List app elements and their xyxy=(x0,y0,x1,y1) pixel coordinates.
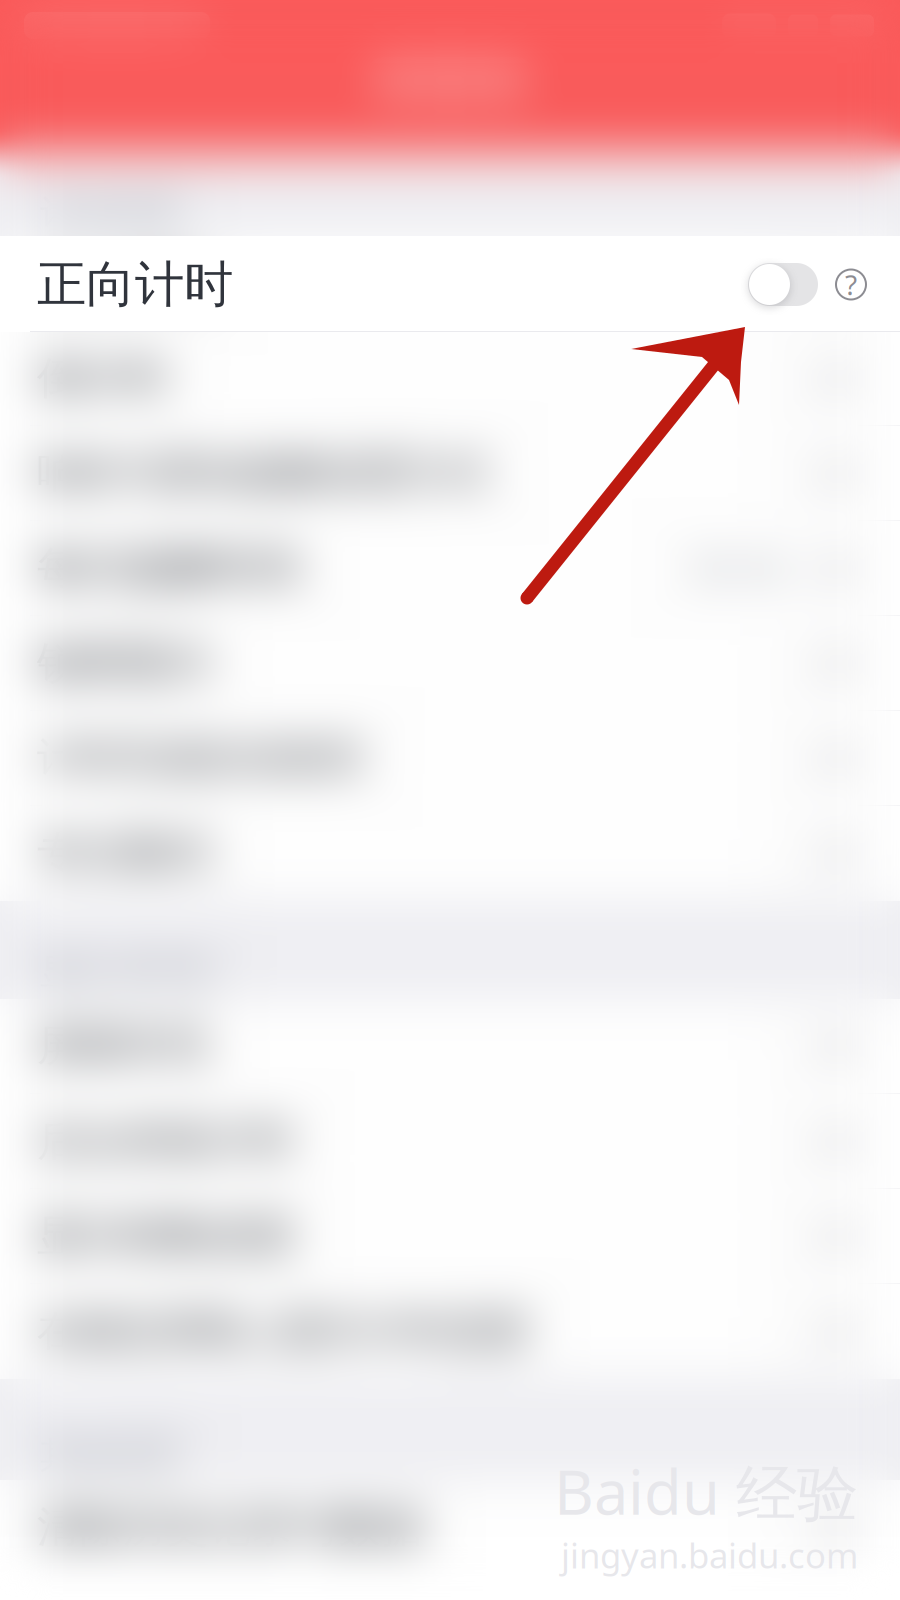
button[interactable]: 响铃与震动提醒设置方式 xyxy=(0,426,900,521)
staticText: 专注模式 xyxy=(37,826,213,880)
staticText: Baidu 经验 xyxy=(554,1450,858,1532)
button[interactable]: 在锁定屏幕上显示计时进度 xyxy=(0,1284,900,1379)
button[interactable]: 倒计时 xyxy=(0,331,900,426)
button[interactable]: 锁屏显示 xyxy=(0,616,900,711)
staticText: 正向计时 xyxy=(37,256,213,310)
staticText: 正向计时 xyxy=(37,254,233,315)
button[interactable]: Help xyxy=(818,237,900,332)
staticText: 显示秒数进度 xyxy=(37,1210,295,1262)
staticText: 每日提醒时间 xyxy=(37,541,301,595)
staticText: 清除历史记录与数据 xyxy=(37,1501,424,1553)
button[interactable]: 清除历史记录与数据 xyxy=(0,1480,900,1575)
button[interactable]: 每日提醒时间 xyxy=(0,521,900,616)
staticText: 后台持续计时 xyxy=(37,1115,295,1167)
button[interactable]: 正向计时 xyxy=(0,237,818,332)
button[interactable]: 计时完成自动保存 xyxy=(0,711,900,806)
button[interactable]: 后台持续计时 xyxy=(0,1094,900,1189)
staticText: 屏幕常亮 xyxy=(37,1020,209,1072)
staticText: 锁屏显示 xyxy=(37,636,213,690)
staticText: 倒计时 xyxy=(37,351,169,405)
staticText: 响铃与震动提醒设置方式 xyxy=(37,448,488,498)
button[interactable]: 专注模式 xyxy=(0,806,900,901)
staticText: 计时设置 xyxy=(40,192,180,234)
button[interactable]: 屏幕常亮 xyxy=(0,999,900,1094)
staticText: 计时完成自动保存 xyxy=(37,733,365,783)
button[interactable]: 显示秒数进度 xyxy=(0,1189,900,1284)
button[interactable]: 正向计时 xyxy=(0,236,900,331)
staticText: jingyan.baidu.com xyxy=(561,1532,858,1578)
staticText: 在锁定屏幕上显示计时进度 xyxy=(37,1306,529,1356)
staticText: ? xyxy=(845,266,857,303)
